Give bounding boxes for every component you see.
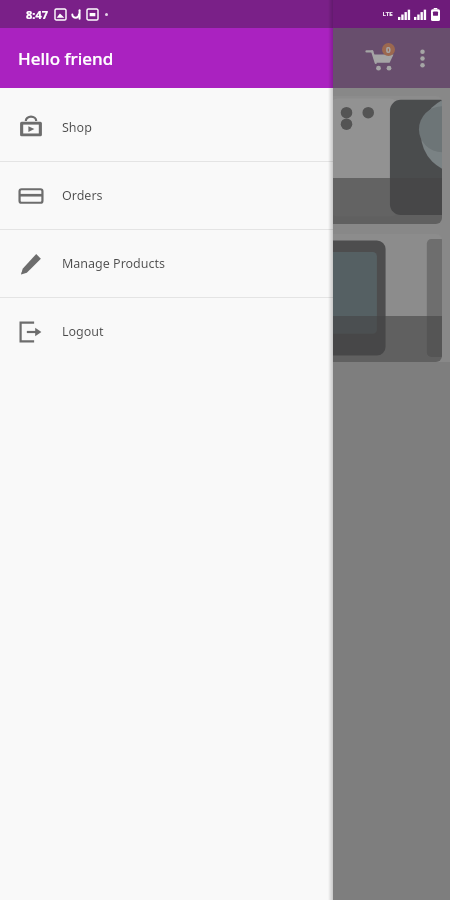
staticText: Manage Products [62,255,166,272]
staticText: LTE [382,10,393,18]
button[interactable]: Logout [0,298,333,365]
button[interactable]: More options [402,38,442,78]
staticText: 8:47 [26,7,48,22]
staticText: 0 [386,44,391,55]
staticText: iPhone 11 [18,192,79,210]
button[interactable]: Orders [0,162,333,229]
staticText: Logout [62,323,104,340]
staticText: iPhone 4 [18,330,72,348]
staticText: Hello friend [18,47,114,70]
button[interactable] [333,0,450,900]
staticText: Shop [62,119,92,136]
button[interactable]: Manage Products [0,230,333,297]
button[interactable]: iPhone 4 [8,234,442,362]
button[interactable]: iPhone 11 [8,96,442,224]
staticText: Orders [62,187,103,204]
button[interactable]: Cart [358,36,402,80]
button[interactable]: Shop [0,94,333,161]
